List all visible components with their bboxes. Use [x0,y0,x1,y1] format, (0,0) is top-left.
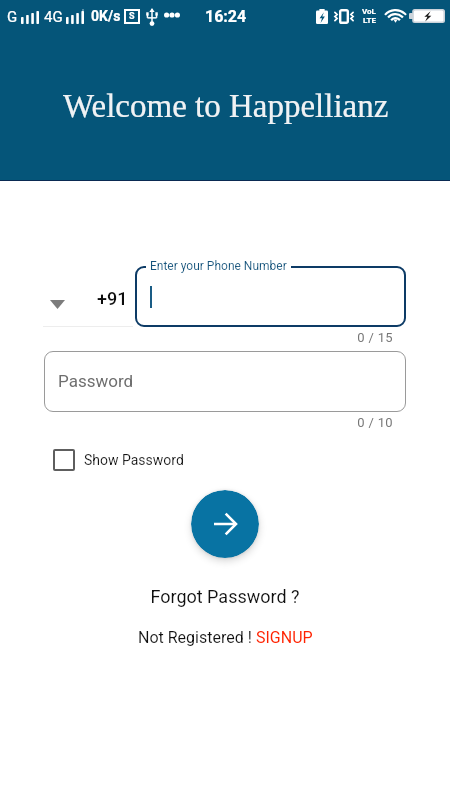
staticText: Show Password [84,452,184,468]
button[interactable]: Show Password [53,449,184,471]
staticText: 0K/s [91,8,121,24]
button[interactable]: Not Registered ! [138,628,313,647]
staticText: Not Registered ! [138,628,256,647]
staticText: 4G [44,8,63,26]
staticText: 0 / 10 [0,415,393,430]
staticText: SIGNUP [256,628,313,647]
staticText: 16:24 [205,7,247,26]
button[interactable] [135,266,406,327]
staticText: +91 [97,288,128,309]
staticText: 0 / 15 [0,330,393,345]
staticText: Password [58,371,134,391]
staticText: LTE [363,16,376,25]
button[interactable]: Password [44,351,406,412]
staticText: G [7,8,18,26]
button[interactable]: Forgot Password ? [0,586,450,607]
staticText: Enter your Phone Number [150,259,287,273]
staticText: S [129,11,135,22]
staticText: VoL [362,7,376,16]
button[interactable]: Continue [191,490,259,558]
button[interactable]: Select country code [43,266,133,327]
staticText: Welcome to Happellianz [63,88,389,125]
